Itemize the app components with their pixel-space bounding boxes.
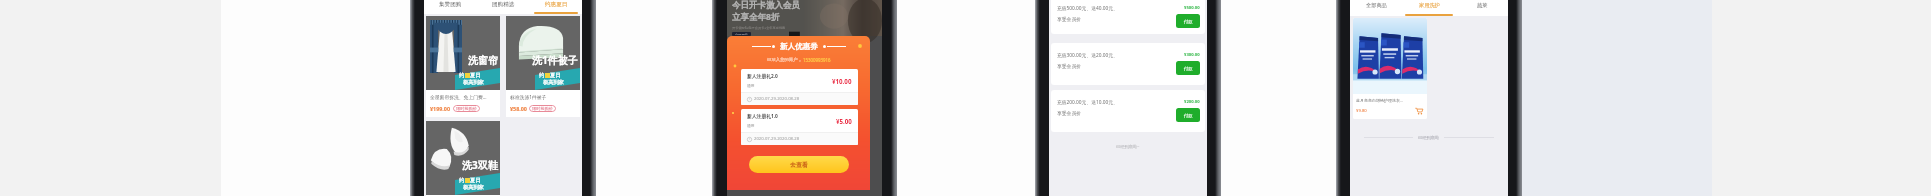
staticText: 立享全年8折	[732, 11, 780, 23]
button[interactable]: 洗3双鞋	[426, 121, 500, 196]
button[interactable]: 去查看	[749, 156, 849, 173]
staticText: 标准洗涤1件被子	[510, 94, 547, 101]
button[interactable]: 付款	[1176, 14, 1200, 28]
button[interactable]: 洗窗帘	[426, 16, 500, 117]
staticText: 洗1件被子	[532, 53, 578, 67]
button[interactable]: 付款	[1176, 61, 1200, 75]
staticText: 集赞团购	[439, 1, 462, 8]
staticText: 充值300.00元、送20.00元、	[1057, 52, 1118, 59]
staticText: 全部商品	[1366, 2, 1387, 9]
button[interactable]: 蔬菜	[1455, 0, 1508, 16]
staticText: 洗窗帘	[468, 54, 498, 67]
staticText: 全屋窗帘拆洗、免上门费...	[430, 94, 487, 101]
button[interactable]: 新人注册礼1.0	[741, 109, 858, 145]
staticText: ¥200.00	[1184, 99, 1200, 105]
staticText: 付款	[1184, 66, 1193, 71]
staticText: 立即开卡	[735, 33, 748, 35]
staticText: 新人注册礼2.0	[747, 73, 778, 80]
staticText: 开卡领写6+电子会员卡+全年享受优惠	[732, 26, 786, 30]
staticText: 享受会员价	[1057, 63, 1081, 69]
staticText: ¥199.00	[430, 105, 451, 112]
staticText: 夏日	[550, 72, 561, 79]
staticText: 付款	[1184, 113, 1193, 118]
button[interactable]: 团购精选	[476, 0, 529, 14]
button[interactable]: Add to cart	[1415, 107, 1423, 115]
staticText: 约	[459, 177, 465, 184]
staticText: ¥5.00	[836, 117, 852, 125]
staticText: 约惠夏日	[545, 1, 568, 8]
staticText: 通用	[747, 123, 755, 128]
staticText: 极高到家	[463, 79, 484, 86]
staticText: 约	[539, 72, 545, 79]
staticText: 通用	[747, 83, 755, 88]
button[interactable]: 全部商品	[1350, 0, 1402, 16]
staticText: 享受会员价	[1057, 16, 1081, 22]
staticText: 蓝月亮亮白增艳护理洗衣...	[1356, 98, 1404, 103]
button[interactable]: 家用洗护	[1402, 0, 1455, 16]
button[interactable]: 集赞团购	[424, 0, 476, 14]
button[interactable]: 蓝月亮亮白增艳护理洗衣...	[1353, 18, 1427, 119]
staticText: 洗3双鞋	[462, 158, 498, 172]
staticText: 已放入您的账户，	[767, 57, 803, 63]
staticText: 享受会员价	[1057, 110, 1081, 116]
button[interactable]: 充值500.00元、送40.00元、	[1051, 0, 1205, 34]
staticText: 团购精选	[492, 1, 515, 8]
staticText: 去查看	[790, 161, 808, 169]
button[interactable]: 新人注册礼2.0	[741, 69, 858, 105]
staticText: 2020-07-29-2020-08-28	[754, 96, 800, 102]
button[interactable]: 付款	[1176, 108, 1200, 122]
staticText: 蔬菜	[1477, 2, 1488, 9]
staticText: 家用洗护	[1419, 2, 1440, 9]
staticText: 极高到家	[543, 79, 564, 86]
staticText: 夏日	[470, 177, 481, 184]
staticText: 已经到底啦	[1418, 135, 1439, 140]
staticText: 新人优惠券	[780, 42, 818, 51]
button[interactable]: 充值200.00元、送10.00元、	[1051, 90, 1205, 132]
staticText: 极高到家	[463, 184, 484, 191]
button[interactable]: 立即开卡	[732, 32, 751, 36]
staticText: 限时抢购价	[456, 106, 477, 111]
staticText: 已经到底啦~	[1116, 144, 1140, 150]
staticText: ¥9.80	[1356, 108, 1367, 114]
button[interactable]: 充值300.00元、送20.00元、	[1051, 43, 1205, 85]
staticText: 付款	[1184, 19, 1193, 24]
staticText: 约	[459, 72, 465, 79]
staticText: 新人注册礼1.0	[747, 113, 778, 120]
staticText: 2020-07-29-2020-08-28	[754, 136, 800, 142]
staticText: ¥10.00	[832, 77, 852, 85]
staticText: ¥300.00	[1184, 52, 1200, 58]
button[interactable]: 约惠夏日	[529, 0, 582, 14]
staticText: 今日开卡激入会员	[732, 0, 800, 11]
staticText: ¥58.00	[510, 105, 527, 112]
staticText: 夏日	[470, 72, 481, 79]
staticText: 15300993916	[803, 57, 831, 63]
staticText: 充值500.00元、送40.00元、	[1057, 5, 1118, 12]
staticText: 限时抢购价	[532, 106, 553, 111]
button[interactable]: 洗1件被子	[506, 16, 580, 117]
staticText: 充值200.00元、送10.00元、	[1057, 99, 1118, 106]
staticText: ¥500.00	[1184, 5, 1200, 11]
